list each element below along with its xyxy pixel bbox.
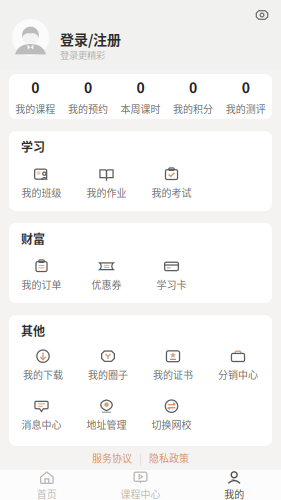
staticText: 学习: [21, 138, 45, 155]
button[interactable]: 消息中心: [9, 398, 74, 430]
button[interactable]: 0: [219, 77, 272, 116]
staticText: 我的预约: [68, 101, 108, 116]
staticText: 隐私政策: [149, 451, 189, 465]
button[interactable]: 地址管理: [74, 398, 139, 430]
staticText: 优惠券: [91, 277, 121, 292]
button[interactable]: 我的作业: [74, 166, 139, 198]
staticText: 我的积分: [173, 101, 213, 116]
button[interactable]: 0: [62, 77, 114, 116]
staticText: 登录更精彩: [60, 48, 105, 61]
button[interactable]: 0: [114, 77, 167, 116]
staticText: 消息中心: [21, 417, 61, 432]
button[interactable]: 设置: [250, 3, 274, 27]
staticText: 我的证书: [153, 367, 193, 382]
button[interactable]: 课程中心: [94, 470, 187, 500]
staticText: 其他: [21, 322, 45, 339]
staticText: |: [139, 450, 142, 466]
staticText: 我的作业: [86, 185, 126, 200]
button[interactable]: 服务协议: [92, 451, 132, 465]
button[interactable]: 首页: [0, 470, 94, 500]
button[interactable]: 0: [9, 77, 62, 116]
staticText: 我的班级: [21, 185, 61, 200]
staticText: 我的圈子: [88, 367, 128, 382]
staticText: 0: [242, 77, 250, 97]
staticText: 首页: [37, 487, 57, 500]
button[interactable]: 切换网校: [139, 398, 204, 430]
button[interactable]: 我的圈子: [75, 348, 140, 380]
button[interactable]: 我的订单: [9, 258, 74, 290]
button[interactable]: 隐私政策: [149, 451, 189, 465]
button[interactable]: 学习卡: [139, 258, 204, 290]
staticText: 0: [136, 77, 144, 97]
staticText: 我的订单: [21, 277, 61, 292]
staticText: 0: [189, 77, 197, 97]
staticText: 0: [84, 77, 92, 97]
button[interactable]: 我的证书: [140, 348, 205, 380]
button[interactable]: 0: [167, 77, 219, 116]
staticText: 分销中心: [218, 367, 258, 382]
button[interactable]: 我的考试: [139, 166, 204, 198]
staticText: 本周课时: [120, 101, 160, 116]
staticText: 我的下载: [23, 367, 63, 382]
staticText: 服务协议: [92, 451, 132, 465]
staticText: 0: [31, 77, 39, 97]
staticText: 课程中心: [120, 487, 160, 500]
staticText: 地址管理: [86, 417, 126, 432]
staticText: 切换网校: [151, 417, 191, 432]
button[interactable]: 分销中心: [205, 348, 270, 380]
button[interactable]: 我的下载: [10, 348, 75, 380]
staticText: 我的考试: [151, 185, 191, 200]
staticText: 我的课程: [15, 101, 55, 116]
button[interactable]: 优惠券: [74, 258, 139, 290]
button[interactable]: 我的班级: [9, 166, 74, 198]
staticText: 财富: [21, 230, 45, 247]
staticText: 我的测评: [226, 101, 266, 116]
staticText: 我的: [224, 487, 244, 500]
button[interactable]: 我的: [187, 470, 281, 500]
staticText: 学习卡: [156, 277, 186, 292]
staticText: 登录/注册: [60, 29, 121, 49]
